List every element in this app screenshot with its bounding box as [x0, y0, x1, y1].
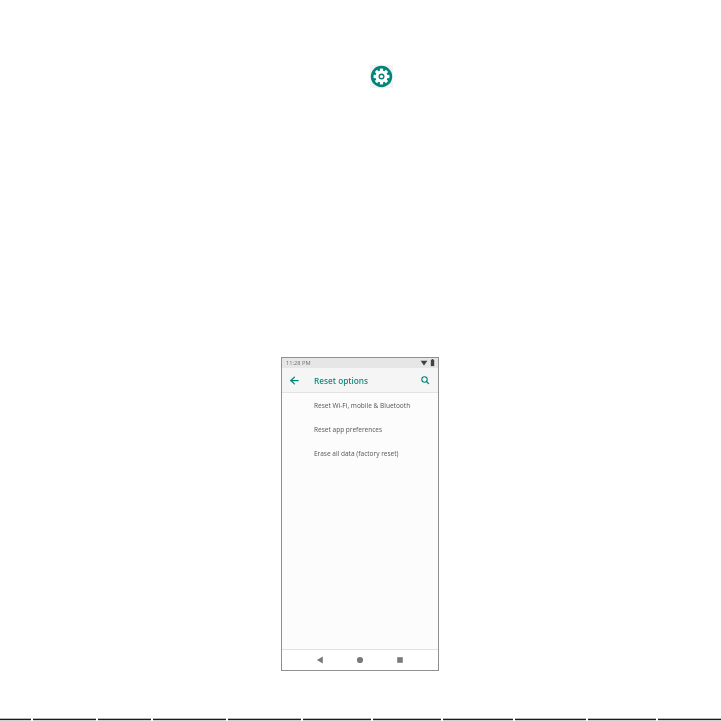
button[interactable]	[314, 654, 326, 666]
button[interactable]	[289, 375, 300, 386]
button[interactable]: Reset Wi-Fi, mobile & Bluetooth	[282, 393, 438, 417]
staticText: 11:28 PM	[286, 359, 311, 367]
button[interactable]: Reset app preferences	[282, 417, 438, 441]
button[interactable]	[394, 654, 406, 666]
button[interactable]	[420, 375, 431, 386]
staticText: Reset options	[314, 375, 369, 386]
staticText: Reset Wi-Fi, mobile & Bluetooth	[314, 401, 411, 410]
button[interactable]	[354, 654, 366, 666]
button[interactable]: Erase all data (factory reset)	[282, 441, 438, 465]
staticText: Erase all data (factory reset)	[314, 449, 399, 458]
staticText: Reset app preferences	[314, 425, 383, 434]
